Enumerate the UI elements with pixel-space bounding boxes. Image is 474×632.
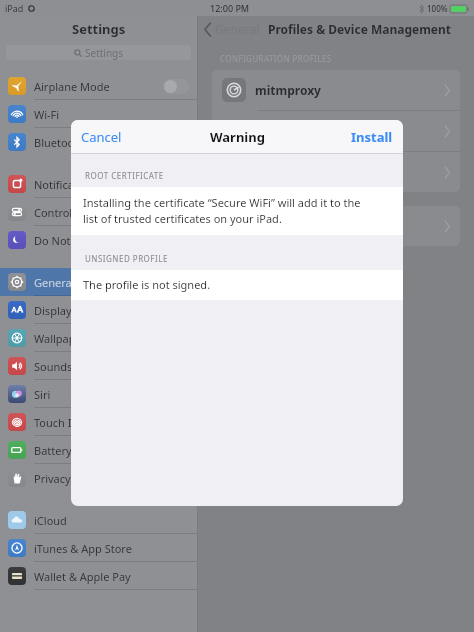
staticText: 12:00 PM — [210, 2, 250, 14]
button[interactable]: Siri — [0, 380, 197, 408]
staticText: Display & Brightness — [34, 303, 141, 318]
staticText: Profiles & Device Management — [268, 21, 452, 37]
staticText: Do Not Disturb — [34, 233, 112, 248]
staticText: UNSIGNED PROFILE — [85, 253, 168, 264]
staticText: General — [34, 275, 75, 290]
staticText: Warning — [210, 128, 265, 146]
staticText: Wallet & Apple Pay — [34, 569, 131, 584]
staticText: Wallpaper — [34, 331, 87, 346]
staticText: Battery — [34, 443, 72, 458]
staticText: Bluetooth — [34, 135, 86, 150]
staticText: Siri — [34, 387, 51, 402]
staticText: ROOT CERTIFICATE — [85, 170, 164, 181]
staticText: Notifications — [34, 177, 100, 192]
button[interactable]: Airplane Mode — [0, 72, 197, 100]
button[interactable]: Control Center — [0, 198, 197, 226]
button[interactable]: Wallet & Apple Pay — [0, 562, 197, 590]
staticText: CONFIGURATION PROFILES — [220, 53, 332, 64]
button[interactable]: Bluetooth — [0, 128, 197, 156]
button[interactable]: Notifications — [0, 170, 197, 198]
button[interactable]: iTunes & App Store — [0, 534, 197, 562]
staticText: Sounds — [34, 359, 73, 374]
button[interactable]: Display & Brightness — [0, 296, 197, 324]
staticText: Touch ID & Passcode — [34, 415, 142, 430]
button[interactable]: Do Not Disturb — [0, 226, 197, 254]
button[interactable]: Install — [351, 120, 393, 153]
button[interactable]: iCloud — [0, 506, 197, 534]
button[interactable] — [212, 152, 460, 192]
button[interactable]: mitmproxy — [212, 70, 460, 110]
staticText: Settings — [72, 20, 126, 38]
staticText: The profile is not signed. — [83, 277, 211, 292]
staticText: iTunes & App Store — [34, 541, 132, 556]
staticText: Cancel — [81, 128, 122, 146]
staticText: iCloud — [34, 513, 67, 528]
button[interactable]: Wallpaper — [0, 324, 197, 352]
button[interactable]: Touch ID & Passcode — [0, 408, 197, 436]
button[interactable]: Privacy — [0, 464, 197, 492]
staticText: Wi-Fi — [34, 107, 60, 122]
button[interactable]: Settings — [6, 45, 191, 60]
button[interactable]: Battery — [0, 436, 197, 464]
staticText: mitmproxy — [255, 82, 321, 98]
staticText: Privacy — [34, 471, 71, 486]
button[interactable] — [212, 111, 460, 151]
button[interactable]: Cancel — [81, 120, 122, 153]
button[interactable]: Wi-Fi — [0, 100, 197, 128]
staticText: Install — [351, 128, 393, 146]
staticText: Airplane Mode — [34, 79, 110, 94]
button[interactable]: Back to General — [204, 21, 452, 37]
staticText: 100% — [427, 3, 448, 14]
staticText: iPad — [5, 2, 24, 14]
staticText: Settings — [85, 46, 124, 60]
button[interactable]: General — [0, 268, 197, 296]
staticText: Installing the certificate “Secure WiFi”… — [83, 195, 377, 226]
staticText: Control Center — [34, 205, 110, 220]
button[interactable]: Sounds — [0, 352, 197, 380]
